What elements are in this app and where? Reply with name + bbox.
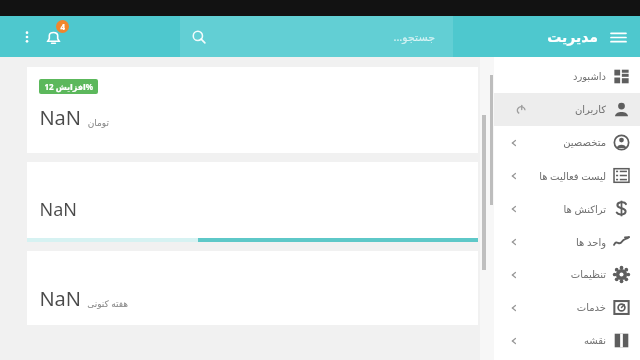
staticText: لیست فعالیت ها: [539, 169, 606, 183]
staticText: تراکنش ها: [563, 202, 606, 216]
other: Search: [192, 30, 206, 44]
button[interactable]: خدمات: [494, 291, 640, 324]
staticText: خدمات: [576, 302, 606, 314]
staticText: ...جستجو: [393, 29, 435, 44]
button[interactable]: واحد ها: [494, 225, 640, 258]
button[interactable]: More options: [14, 24, 40, 50]
staticText: متخصصین: [563, 137, 606, 149]
button[interactable]: افزایش 12%: [27, 67, 478, 153]
staticText: کاربران: [574, 104, 606, 116]
staticText: واحد ها: [576, 235, 606, 249]
staticText: NaN: [39, 197, 77, 222]
button[interactable]: متخصصین: [494, 126, 640, 159]
button[interactable]: Notifications: [38, 22, 68, 52]
staticText: NaN: [39, 285, 81, 312]
staticText: 4: [60, 21, 65, 32]
button[interactable]: لیست فعالیت ها: [494, 159, 640, 192]
button[interactable]: تنظیمات: [494, 258, 640, 291]
staticText: هفته کنونی: [87, 297, 128, 309]
staticText: مدیریت: [547, 29, 598, 45]
staticText: افزایش 12%: [44, 81, 93, 92]
button[interactable]: [27, 162, 478, 242]
button[interactable]: Search: [180, 16, 453, 57]
button[interactable]: NaN: [27, 251, 478, 325]
button[interactable]: داشبورد: [494, 60, 640, 93]
button[interactable]: کاربران: [494, 93, 640, 126]
button[interactable]: تراکنش ها: [494, 192, 640, 225]
staticText: تنظیمات: [570, 269, 606, 281]
button[interactable]: Open navigation menu: [604, 23, 632, 51]
staticText: نقشه: [583, 335, 606, 347]
staticText: NaN: [39, 104, 81, 131]
staticText: تومان: [87, 118, 109, 128]
button[interactable]: نقشه: [494, 324, 640, 357]
staticText: داشبورد: [572, 71, 606, 83]
